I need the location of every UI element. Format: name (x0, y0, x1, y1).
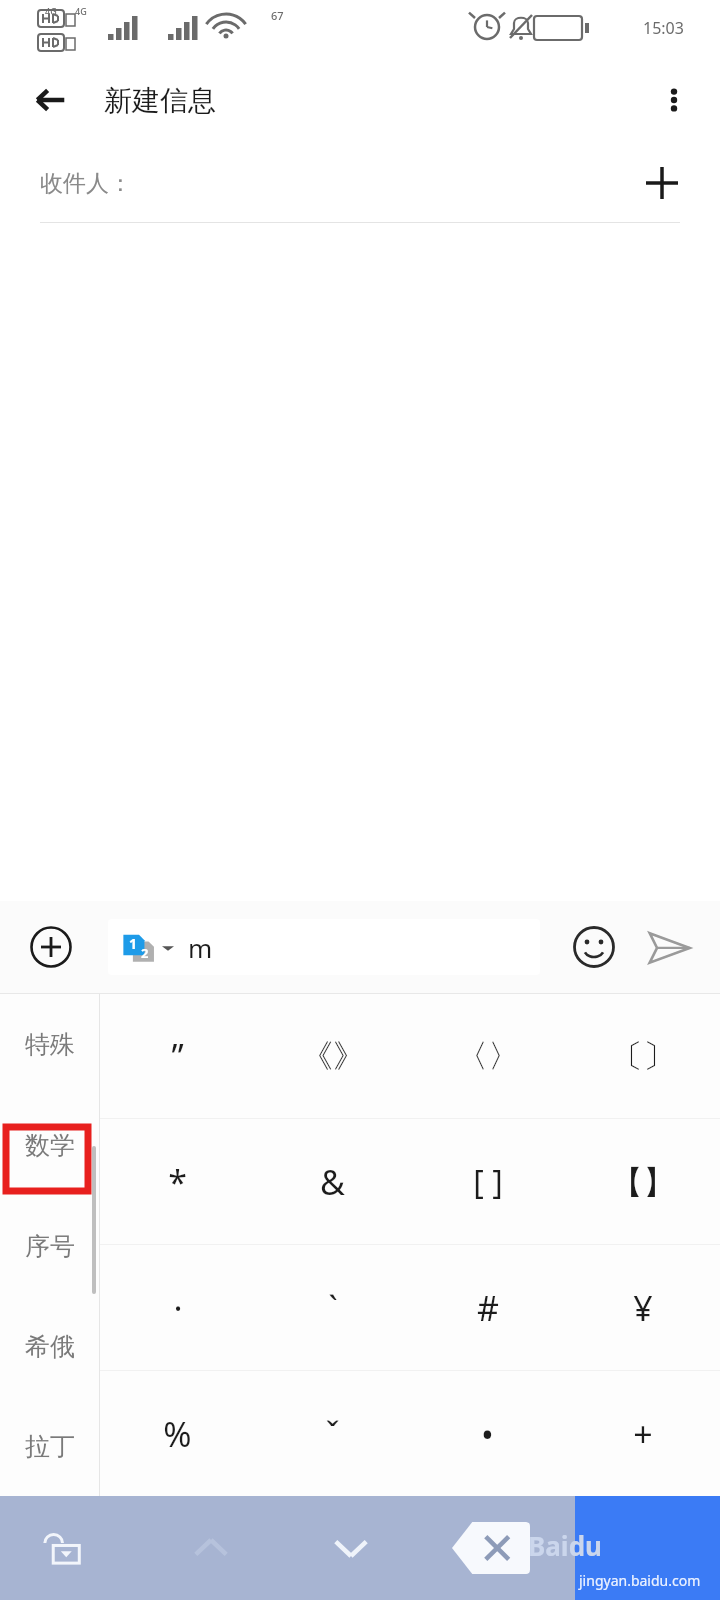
button[interactable]: 〈〉 (410, 994, 565, 1118)
staticText: Baidu (528, 1528, 602, 1563)
button[interactable]: ˇ (255, 1371, 410, 1496)
staticText: # (477, 1285, 499, 1331)
button[interactable]: ˋ (255, 1245, 410, 1370)
button[interactable]: 数学 (0, 1095, 100, 1196)
button[interactable]: 【】 (565, 1119, 720, 1244)
button[interactable]: % (100, 1371, 255, 1496)
button[interactable]: [ ] (410, 1119, 565, 1244)
button[interactable]: 拉丁 (0, 1396, 100, 1496)
button[interactable]: & (255, 1119, 410, 1244)
staticText: ¥ (633, 1285, 653, 1331)
button[interactable]: Send (640, 918, 698, 976)
staticText: jingyan.baidu.com (579, 1571, 701, 1590)
button[interactable]: • (410, 1371, 565, 1496)
staticText: % (163, 1411, 192, 1457)
staticText: 4G (75, 5, 87, 17)
staticText: 新建信息 (104, 83, 216, 118)
button[interactable]: Back (26, 76, 74, 124)
staticText: + (633, 1411, 653, 1457)
staticText: 《》 (301, 1036, 365, 1076)
button[interactable]: Add attachment (22, 918, 80, 976)
staticText: · (173, 1285, 183, 1331)
button[interactable]: + (565, 1371, 720, 1496)
button[interactable]: 〔〕 (565, 994, 720, 1118)
button[interactable]: More options (650, 76, 698, 124)
button[interactable]: 希俄 (0, 1296, 100, 1396)
staticText: ˇ (325, 1411, 340, 1457)
staticText: [ ] (473, 1160, 503, 1204)
staticText: 15:03 (643, 17, 684, 39)
button[interactable]: ¥ (565, 1245, 720, 1370)
staticText: 〔〕 (611, 1036, 675, 1076)
staticText: 特殊 (25, 1029, 75, 1060)
staticText: 【】 (611, 1162, 675, 1202)
staticText: 序号 (25, 1231, 75, 1262)
button[interactable]: Emoji (566, 919, 622, 975)
button[interactable]: 1 (108, 919, 540, 975)
button[interactable]: Add recipient (636, 157, 688, 209)
button[interactable]: ” (100, 994, 255, 1118)
staticText: 拉丁 (25, 1431, 75, 1462)
button[interactable]: * (100, 1119, 255, 1244)
button[interactable]: 《》 (255, 994, 410, 1118)
staticText: 〈〉 (456, 1036, 520, 1076)
button[interactable]: 特殊 (0, 994, 100, 1095)
staticText: 2 (141, 944, 149, 962)
button[interactable]: Previous page (180, 1517, 242, 1579)
button[interactable]: Next page (320, 1517, 382, 1579)
staticText: ˋ (328, 1285, 338, 1331)
staticText: m (188, 930, 213, 965)
button[interactable]: # (410, 1245, 565, 1370)
staticText: 希俄 (25, 1331, 75, 1362)
staticText: * (168, 1159, 187, 1205)
staticText: 1 (129, 934, 138, 953)
button[interactable]: Backspace (452, 1522, 530, 1574)
button[interactable]: Lock (34, 1517, 96, 1579)
staticText: & (320, 1159, 345, 1205)
staticText: 收件人： (40, 169, 132, 198)
staticText: ” (171, 1033, 184, 1079)
staticText: 4G (45, 5, 57, 17)
button[interactable]: · (100, 1245, 255, 1370)
staticText: 数学 (25, 1130, 75, 1161)
staticText: • (481, 1411, 494, 1457)
button[interactable]: 序号 (0, 1196, 100, 1296)
staticText: 67 (271, 8, 284, 23)
